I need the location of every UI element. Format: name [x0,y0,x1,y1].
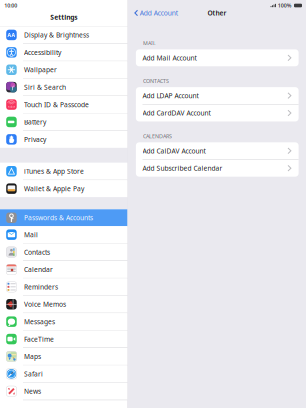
staticText: News [24,387,41,396]
staticText: Privacy [24,135,46,144]
button[interactable]: Touch ID & Passcode [0,96,127,113]
button[interactable]: Passwords & Accounts [0,209,127,226]
staticText: Add LDAP Account [142,91,198,100]
staticText: MAIL [143,40,156,47]
button[interactable]: Reminders [0,278,127,295]
staticText: CALENDARS [143,133,172,140]
staticText: Add CardDAV Account [142,109,210,117]
button[interactable]: Mail [0,226,127,243]
staticText: Add Account [140,8,178,17]
staticText: Wallet & Apple Pay [24,184,84,193]
button[interactable]: Add Mail Account [136,49,299,66]
staticText: Calendar [24,265,53,274]
button[interactable]: Add LDAP Account [136,87,299,104]
staticText: 10:00 [4,2,17,9]
button[interactable]: FaceTime [0,331,127,347]
button[interactable]: Contacts [0,244,127,260]
button[interactable]: Calendar [0,261,127,278]
button[interactable]: Privacy [0,131,127,148]
button[interactable]: Battery [0,113,127,130]
button[interactable]: iTunes & App Store [0,163,127,180]
button[interactable]: Add Account [128,5,178,20]
button[interactable]: Voice Memos [0,296,127,313]
button[interactable]: Add Subscribed Calendar [136,160,299,177]
staticText: Battery [24,117,46,126]
button[interactable]: Wallpaper [0,61,127,78]
staticText: Mail [24,230,38,239]
staticText: CONTACTS [143,77,169,85]
staticText: Accessibility [24,48,61,57]
staticText: Add Mail Account [142,53,196,62]
button[interactable]: Add CalDAV Account [136,142,299,159]
button[interactable]: Siri & Search [0,79,127,96]
staticText: AA [7,31,15,38]
staticText: 100% [278,2,292,9]
staticText: Wallpaper [24,65,57,74]
staticText: Passwords & Accounts [24,213,93,222]
staticText: Maps [24,352,41,361]
staticText: Display & Brightness [24,30,89,39]
staticText: Reminders [24,282,58,291]
button[interactable]: Maps [0,348,127,365]
staticText: Siri & Search [24,83,66,92]
button[interactable]: Add CardDAV Account [136,105,299,121]
staticText: Other [207,8,226,17]
staticText: iTunes & App Store [24,167,84,176]
staticText: Safari [24,369,43,378]
button[interactable]: Wallet & Apple Pay [0,180,127,197]
staticText: Touch ID & Passcode [24,100,89,109]
button[interactable]: Safari [0,365,127,382]
staticText: Add Subscribed Calendar [142,164,222,173]
staticText: Add CalDAV Account [142,146,205,155]
button[interactable]: Messages [0,313,127,330]
button[interactable]: AA [0,26,127,43]
staticText: FaceTime [24,335,54,343]
staticText: Settings [50,13,77,21]
button[interactable]: News [0,383,127,400]
staticText: Voice Memos [24,300,66,309]
staticText: Contacts [24,248,50,256]
button[interactable]: Accessibility [0,44,127,61]
staticText: Messages [24,317,55,326]
